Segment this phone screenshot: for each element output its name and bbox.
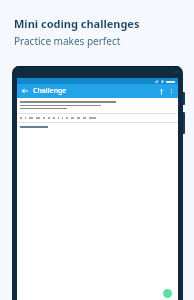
staticText: Mini coding challenges xyxy=(14,16,140,31)
button[interactable]: Back xyxy=(20,86,30,96)
button[interactable]: Voice input xyxy=(156,86,167,97)
staticText: Practice makes perfect xyxy=(14,34,121,48)
button[interactable]: More options xyxy=(167,86,176,97)
staticText: Challenge xyxy=(33,86,67,96)
button[interactable]: Run code xyxy=(163,289,172,298)
